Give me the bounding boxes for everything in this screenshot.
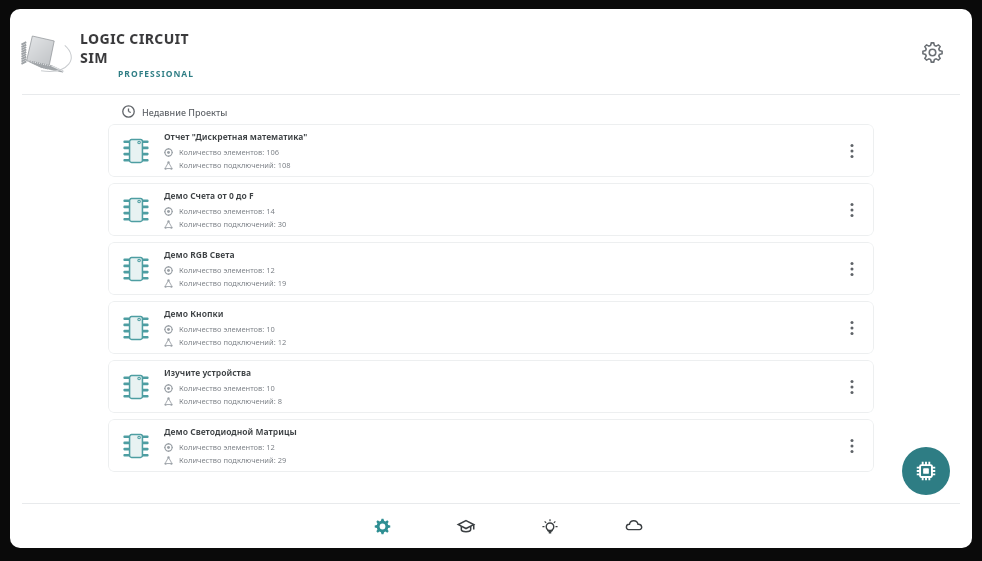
staticText: PROFESSIONAL <box>80 68 194 77</box>
staticText: Количество элементов: 14 <box>179 206 275 216</box>
staticText: Количество подключений: 8 <box>179 396 282 406</box>
staticText: Демо Светодиодной Матрицы <box>164 426 297 438</box>
button[interactable]: Демо Кнопки <box>108 301 874 354</box>
staticText: Изучите устройства <box>164 367 252 379</box>
button[interactable]: Демо Светодиодной Матрицы <box>108 419 874 472</box>
button[interactable]: Отчет "Дискретная математика" <box>108 124 874 177</box>
button[interactable]: More options <box>836 308 868 348</box>
staticText: Количество подключений: 12 <box>179 337 287 347</box>
button[interactable]: More options <box>836 426 868 466</box>
staticText: Количество подключений: 108 <box>179 160 291 170</box>
button[interactable]: More options <box>836 249 868 289</box>
staticText: Недавние Проекты <box>142 106 228 118</box>
staticText: Количество подключений: 29 <box>179 455 287 465</box>
staticText: Количество элементов: 12 <box>179 265 275 275</box>
button[interactable]: Projects <box>365 509 399 543</box>
staticText: Количество подключений: 30 <box>179 219 287 229</box>
button[interactable]: Settings <box>912 32 952 72</box>
staticText: Демо Счета от 0 до F <box>164 190 254 202</box>
button[interactable]: More options <box>836 367 868 407</box>
staticText: LOGIC CIRCUIT SIM <box>80 29 194 67</box>
staticText: Демо RGB Света <box>164 249 235 261</box>
button[interactable]: Демо Счета от 0 до F <box>108 183 874 236</box>
button[interactable]: More options <box>836 131 868 171</box>
button[interactable]: Демо RGB Света <box>108 242 874 295</box>
button[interactable]: More options <box>836 190 868 230</box>
staticText: Количество элементов: 12 <box>179 442 275 452</box>
button[interactable]: Learn <box>449 509 483 543</box>
staticText: Количество подключений: 19 <box>179 278 287 288</box>
staticText: Количество элементов: 10 <box>179 383 275 393</box>
button[interactable]: New circuit <box>902 447 950 495</box>
button[interactable]: Cloud <box>617 509 651 543</box>
staticText: Отчет "Дискретная математика" <box>164 131 308 143</box>
button[interactable]: Ideas <box>533 509 567 543</box>
staticText: Количество элементов: 10 <box>179 324 275 334</box>
staticText: Количество элементов: 106 <box>179 147 280 157</box>
button[interactable]: Изучите устройства <box>108 360 874 413</box>
staticText: Демо Кнопки <box>164 308 224 320</box>
